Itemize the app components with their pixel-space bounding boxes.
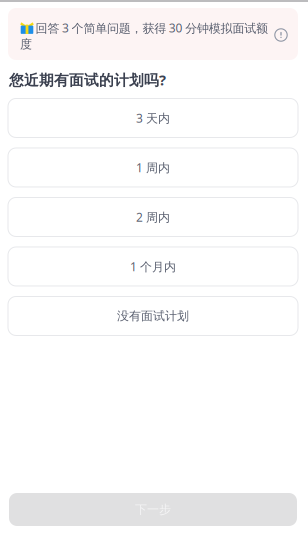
staticText: 没有面试计划 — [117, 309, 189, 323]
staticText: 回答 3 个简单问题，获得 30 分钟模拟面试额度 — [20, 20, 268, 52]
button[interactable]: 1 个月内 — [8, 247, 298, 286]
staticText: 3 天内 — [136, 110, 170, 126]
staticText: 1 个月内 — [130, 258, 176, 274]
button[interactable]: 没有面试计划 — [8, 296, 298, 335]
staticText: 1 周内 — [136, 159, 170, 175]
button[interactable]: 2 周内 — [8, 197, 298, 236]
button[interactable]: 活动详情 — [8, 8, 288, 42]
button[interactable]: 1 周内 — [8, 148, 298, 187]
staticText: 您近期有面试的计划吗? — [9, 70, 166, 89]
staticText: 2 周内 — [136, 209, 170, 225]
staticText: 下一步 — [135, 502, 171, 517]
button[interactable]: 3 天内 — [8, 98, 298, 137]
